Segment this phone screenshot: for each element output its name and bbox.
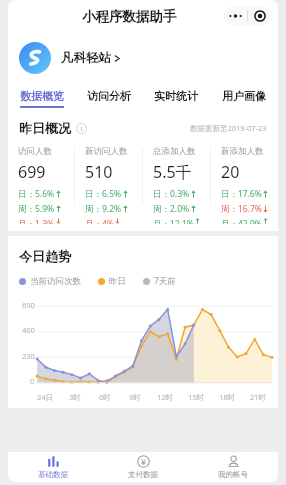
staticText: 数据概览 [20, 89, 64, 103]
staticText: 昨日 [109, 276, 126, 287]
staticText: 当前访问次数 [30, 276, 81, 287]
staticText: 15时 [188, 392, 205, 402]
staticText: 699 [18, 161, 46, 183]
button[interactable]: 基础数据 [8, 452, 98, 482]
button[interactable]: 访问分析 [75, 85, 142, 112]
button[interactable]: Close [248, 6, 272, 25]
staticText: 6时 [99, 392, 111, 402]
staticText: 实时统计 [154, 89, 198, 103]
staticText: 9时 [129, 392, 141, 402]
staticText: 12时 [157, 392, 174, 402]
staticText: 月：12.1% [153, 218, 194, 224]
staticText: 18时 [219, 392, 236, 402]
staticText: 今日趋势 [19, 248, 71, 264]
staticText: 690 [22, 300, 35, 310]
staticText: 460 [22, 325, 35, 335]
staticText: 访问分析 [87, 89, 131, 103]
button[interactable]: 数据概览 [8, 85, 75, 112]
button[interactable]: 总添加人数 [143, 146, 210, 224]
staticText: 5.5千 [153, 161, 192, 183]
staticText: 24日 [37, 392, 54, 402]
staticText: 3时 [69, 392, 81, 402]
button[interactable]: 7天前 [143, 275, 176, 287]
staticText: 昨日概况 [19, 120, 71, 136]
button[interactable]: 新添加人数 [211, 146, 278, 224]
button[interactable]: 实时统计 [142, 85, 210, 112]
button[interactable]: 支付数据 [98, 452, 188, 482]
staticText: 周：16.7% [221, 203, 262, 215]
staticText: 周：2.0% [153, 203, 190, 215]
staticText: 0 [30, 376, 35, 386]
staticText: 月：42.9% [221, 218, 262, 224]
staticText: 21时 [250, 392, 267, 402]
staticText: 月：1.3% [18, 218, 55, 224]
staticText: 基础数据 [38, 470, 68, 479]
staticText: 510 [85, 161, 113, 183]
staticText: 周：9.2% [85, 203, 122, 215]
button[interactable]: Info [76, 123, 87, 134]
button[interactable]: 凡科轻站 [8, 31, 278, 85]
staticText: 日：5.6% [18, 188, 55, 200]
staticText: 7天前 [154, 275, 176, 287]
staticText: 用户画像 [222, 89, 266, 103]
button[interactable]: 我的帐号 [188, 452, 278, 482]
staticText: 凡科轻站 [61, 50, 111, 66]
button[interactable]: 昨日 [98, 276, 126, 287]
staticText: 支付数据 [128, 470, 158, 479]
staticText: 访问人数 [18, 146, 52, 157]
staticText: 小程序数据助手 [82, 8, 177, 25]
staticText: 日：0.3% [153, 188, 190, 200]
button[interactable]: More [224, 6, 247, 25]
staticText: 总添加人数 [153, 146, 196, 157]
button[interactable]: 新访问人数 [75, 146, 142, 224]
button[interactable]: 用户画像 [210, 85, 278, 112]
staticText: 新添加人数 [221, 146, 264, 157]
button[interactable]: 当前访问次数 [19, 276, 81, 287]
staticText: 我的帐号 [218, 470, 248, 479]
staticText: 月：4% [85, 218, 114, 224]
staticText: 日：6.5% [85, 188, 122, 200]
staticText: 新访问人数 [85, 146, 128, 157]
staticText: 日：17.6% [221, 188, 262, 200]
staticText: 20 [221, 161, 240, 183]
button[interactable]: 访问人数 [8, 146, 74, 224]
staticText: 数据更新至2019-07-23 [190, 123, 267, 133]
staticText: 周：5.9% [18, 203, 55, 215]
staticText: 230 [22, 351, 35, 361]
